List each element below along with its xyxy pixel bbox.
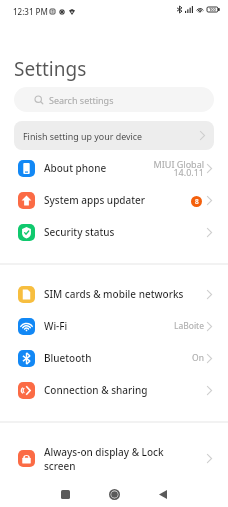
button[interactable]: Always-on display & Lock screen: [0, 439, 228, 477]
staticText: MIUI Global 14.0.11: [153, 158, 204, 178]
button[interactable]: Connection & sharing: [0, 374, 228, 406]
staticText: Connection & sharing: [44, 383, 207, 397]
staticText: Wi-Fi: [44, 319, 174, 333]
button[interactable]: Back: [153, 484, 173, 504]
staticText: On: [192, 352, 204, 364]
staticText: SIM cards & mobile networks: [44, 287, 207, 301]
button[interactable]: Wi-Fi: [0, 310, 228, 342]
staticText: 12:31 PM: [13, 6, 48, 17]
staticText: Settings: [14, 56, 87, 82]
button[interactable]: Home: [104, 484, 124, 504]
staticText: Search settings: [49, 94, 114, 106]
staticText: Finish setting up your device: [23, 130, 143, 142]
button[interactable]: SIM cards & mobile networks: [0, 278, 228, 310]
button[interactable]: Security status: [0, 216, 228, 248]
button[interactable]: System apps updater: [0, 184, 228, 216]
staticText: 100: [209, 7, 216, 12]
button[interactable]: About phone: [0, 152, 228, 184]
staticText: Security status: [44, 225, 207, 239]
button[interactable]: Recents: [55, 484, 75, 504]
button[interactable]: Bluetooth: [0, 342, 228, 374]
staticText: LaBoite: [174, 320, 204, 332]
staticText: Bluetooth: [44, 351, 192, 365]
staticText: System apps updater: [44, 193, 191, 207]
staticText: Always-on display & Lock screen: [44, 445, 207, 472]
button[interactable]: Search settings: [14, 87, 214, 112]
staticText: About phone: [44, 161, 153, 175]
staticText: 8: [195, 197, 199, 206]
button[interactable]: Finish setting up your device: [14, 121, 214, 150]
